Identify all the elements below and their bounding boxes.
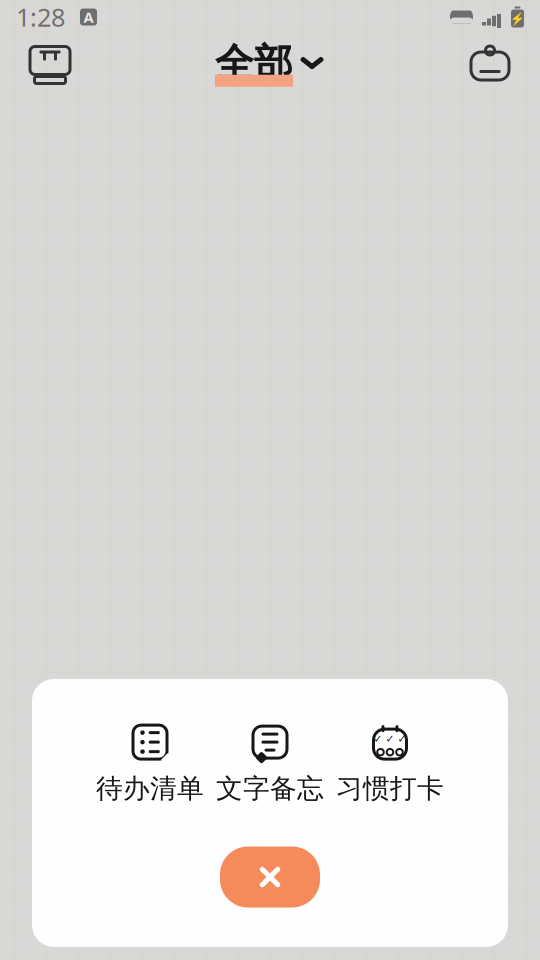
staticText: 1:28 [16,0,65,34]
staticText: 文字备忘 [216,772,324,805]
button[interactable]: Premium [462,37,518,89]
staticText: ✓ [397,733,406,745]
button[interactable]: 文字备忘 [210,720,330,806]
staticText: ✓ [385,733,394,745]
button[interactable]: Close [220,846,320,907]
staticText: A [83,7,93,27]
button[interactable]: 全部 [215,37,325,89]
staticText: 待办清单 [96,772,204,805]
button[interactable]: Archive [22,37,78,89]
staticText: 全部 [215,39,293,87]
staticText: 习惯打卡 [336,772,444,805]
button[interactable]: 待办清单 [90,720,210,806]
staticText: ✓ [373,733,382,745]
button[interactable]: ✓ [330,720,450,806]
staticText: ⚡ [510,12,525,25]
